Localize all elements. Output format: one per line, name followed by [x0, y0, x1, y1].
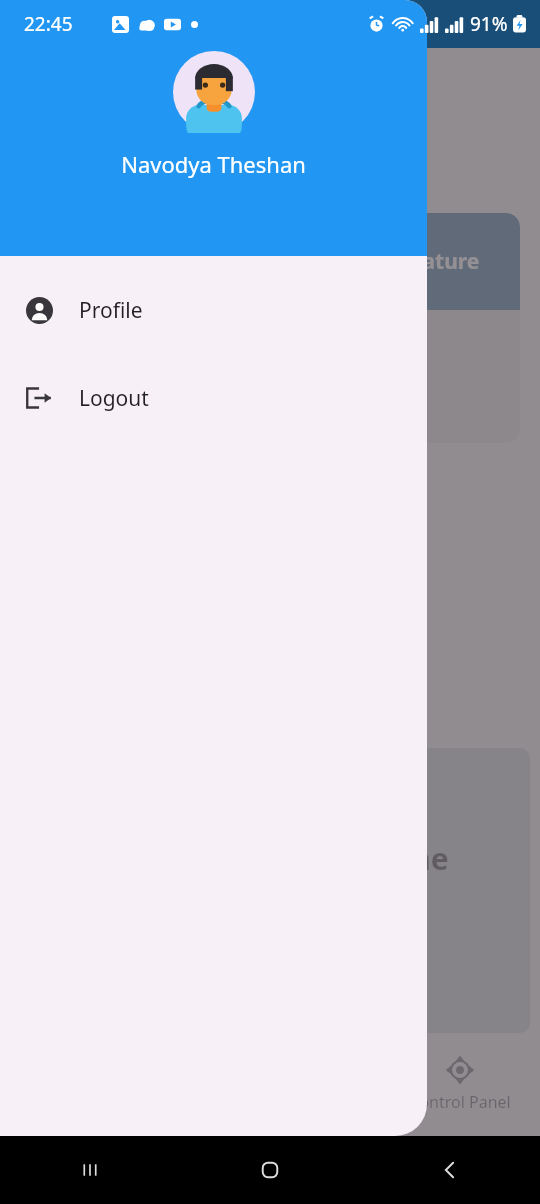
button[interactable]: Logout — [0, 372, 427, 424]
staticText: 28 °C — [344, 333, 428, 379]
button[interactable]: Home — [180, 1136, 360, 1204]
staticText: Navodya Theshan — [121, 149, 306, 179]
staticText: Temperature — [344, 247, 480, 276]
staticText: Profile — [79, 296, 143, 325]
staticText: Control Panel — [409, 1091, 511, 1113]
button[interactable]: Recent apps — [0, 1136, 180, 1204]
staticText: 91% — [470, 11, 508, 37]
staticText: 22:45 — [24, 11, 73, 37]
button[interactable]: Control Panel — [390, 1055, 530, 1113]
staticText: Ozone — [354, 838, 449, 879]
button[interactable]: Back — [360, 1136, 540, 1204]
staticText: Logout — [79, 384, 149, 413]
button[interactable]: Profile — [0, 284, 427, 336]
